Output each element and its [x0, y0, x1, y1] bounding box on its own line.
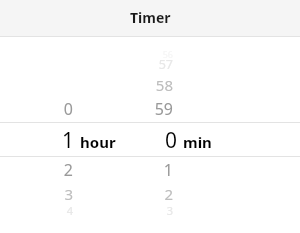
staticText: 2 — [3, 159, 73, 181]
staticText: 0 — [3, 98, 73, 120]
button[interactable]: 0 min — [165, 126, 207, 155]
staticText: hour — [80, 132, 116, 152]
button[interactable]: Timer — [0, 0, 300, 37]
button[interactable]: 1 hour — [62, 126, 111, 155]
button[interactable]: Minutes — [120, 37, 240, 233]
staticText: min — [183, 132, 212, 152]
staticText: 58 — [103, 75, 173, 95]
staticText: Timer — [130, 8, 171, 27]
button[interactable]: Hours — [0, 37, 120, 233]
staticText: 0 — [165, 126, 178, 155]
staticText: 57 — [103, 56, 173, 73]
staticText: 3 — [3, 184, 73, 204]
staticText: 1 — [103, 159, 173, 181]
staticText: 59 — [103, 98, 173, 120]
staticText: 2 — [103, 184, 173, 204]
staticText: 1 — [62, 126, 75, 155]
